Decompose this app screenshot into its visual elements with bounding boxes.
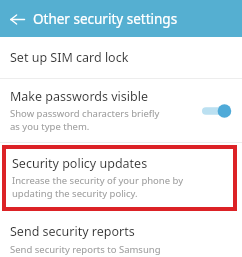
staticText: Security policy updates — [12, 155, 148, 172]
button[interactable]: Make passwords visible — [0, 79, 242, 142]
staticText: Increase the security of your phone by u… — [12, 174, 184, 200]
button[interactable]: Navigate up — [6, 8, 28, 30]
button[interactable]: Send security reports — [0, 211, 242, 257]
staticText: Show password characters briefly as you … — [10, 107, 160, 133]
staticText: Set up SIM card lock — [10, 49, 129, 66]
button[interactable]: Set up SIM card lock — [0, 37, 242, 78]
button[interactable]: Security policy updates — [2, 145, 237, 211]
staticText: Send security reports — [10, 223, 135, 240]
staticText: Send security reports to Samsung — [10, 243, 161, 256]
button[interactable]: Make passwords visible toggle — [202, 99, 236, 123]
staticText: Make passwords visible — [10, 88, 148, 105]
staticText: Other security settings — [33, 10, 178, 28]
